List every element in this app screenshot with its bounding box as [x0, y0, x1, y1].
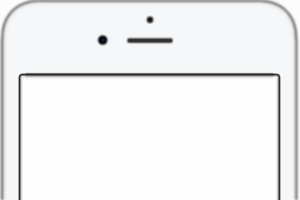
button[interactable]: Phone front preview: [0, 0, 300, 200]
